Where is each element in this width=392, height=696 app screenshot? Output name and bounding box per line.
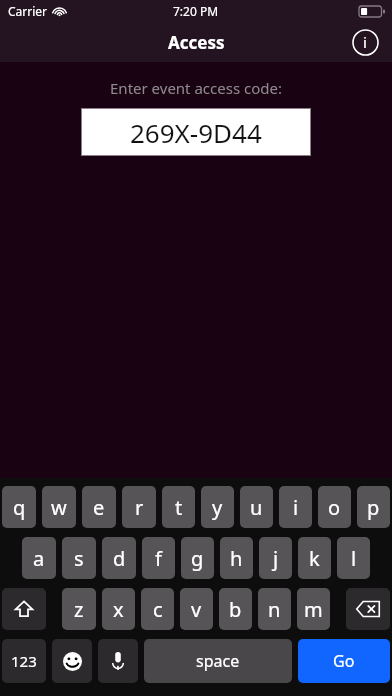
staticText: 123 (11, 651, 37, 671)
staticText: n (268, 596, 281, 623)
staticText: i (293, 494, 299, 521)
staticText: a (33, 545, 45, 572)
button[interactable]: b (219, 588, 252, 630)
button[interactable]: q (2, 486, 36, 528)
staticText: j (273, 545, 279, 572)
staticText: space (196, 650, 240, 672)
button[interactable]: Voice input (98, 639, 138, 683)
button[interactable]: t (162, 486, 195, 528)
button[interactable]: z (62, 588, 96, 630)
staticText: l (351, 545, 357, 572)
staticText: t (175, 494, 183, 521)
staticText: k (309, 545, 320, 572)
staticText: q (13, 494, 26, 521)
staticText: z (74, 596, 84, 623)
staticText: c (153, 596, 163, 623)
staticText: Enter event access code: (0, 78, 392, 98)
button[interactable]: r (122, 486, 156, 528)
button[interactable]: j (259, 537, 292, 579)
staticText: s (74, 545, 84, 572)
button[interactable]: f (142, 537, 175, 579)
staticText: e (93, 494, 105, 521)
button[interactable]: o (318, 486, 351, 528)
button[interactable]: s (62, 537, 96, 579)
staticText: u (250, 494, 263, 521)
button[interactable]: k (298, 537, 331, 579)
button[interactable]: w (42, 486, 76, 528)
button[interactable]: 123 (2, 639, 46, 683)
staticText: i (363, 32, 367, 52)
staticText: x (113, 596, 124, 623)
staticText: h (230, 545, 243, 572)
staticText: 7:20 PM (173, 3, 219, 19)
staticText: d (113, 545, 126, 572)
staticText: o (328, 494, 341, 521)
staticText: w (51, 494, 67, 521)
button[interactable]: l (337, 537, 370, 579)
button[interactable]: 269X-9D44 (82, 109, 310, 155)
button[interactable]: p (357, 486, 390, 528)
button[interactable]: v (180, 588, 213, 630)
button[interactable]: n (258, 588, 291, 630)
staticText: r (135, 494, 144, 521)
staticText: y (212, 494, 223, 521)
button[interactable]: Backspace (346, 588, 390, 630)
button[interactable]: Go (298, 639, 390, 683)
staticText: v (191, 596, 202, 623)
button[interactable]: h (220, 537, 253, 579)
staticText: m (304, 596, 323, 623)
staticText: Access (168, 31, 225, 54)
staticText: p (367, 494, 380, 521)
button[interactable]: space (144, 639, 292, 683)
button[interactable]: x (102, 588, 135, 630)
button[interactable]: y (201, 486, 234, 528)
button[interactable]: i (279, 486, 312, 528)
staticText: g (191, 545, 204, 572)
button[interactable]: Emoji (52, 639, 92, 683)
button[interactable]: c (141, 588, 174, 630)
button[interactable]: a (22, 537, 56, 579)
staticText: b (229, 596, 242, 623)
button[interactable]: g (181, 537, 214, 579)
button[interactable]: e (82, 486, 116, 528)
button[interactable]: m (297, 588, 330, 630)
staticText: Carrier (8, 3, 48, 19)
button[interactable]: d (102, 537, 136, 579)
button[interactable]: Shift (2, 588, 46, 630)
staticText: Go (333, 650, 355, 672)
staticText: 269X-9D44 (130, 115, 262, 150)
button[interactable]: Info (348, 25, 382, 59)
staticText: f (155, 545, 162, 572)
button[interactable]: u (240, 486, 273, 528)
